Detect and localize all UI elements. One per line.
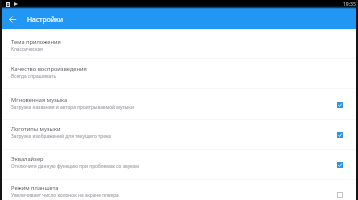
staticText: Увеличивает число колонок на экране плее… [11, 192, 119, 199]
staticText: Всегда спрашивать [11, 73, 57, 80]
staticText: Мгновенная музыка [11, 96, 68, 104]
button[interactable]: Back [2, 9, 23, 29]
button[interactable]: Качество воспроизведения [2, 59, 356, 89]
staticText: Режим планшета [11, 184, 59, 192]
button[interactable]: Мгновенная музыка [2, 89, 356, 120]
staticText: Качество воспроизведения [11, 65, 87, 73]
staticText: Классическая [11, 46, 43, 53]
staticText: Тема приложения [11, 38, 61, 46]
staticText: Загрузка названия и автора проигрываемой… [11, 104, 134, 111]
button[interactable]: Логотипы музыки [2, 120, 356, 150]
staticText: Настройки [27, 15, 64, 24]
staticText: Загрузка изображений для текущего трека [11, 133, 111, 140]
button[interactable]: Эквалайзер [2, 150, 356, 180]
button[interactable]: Тема приложения [2, 29, 356, 59]
button[interactable]: Режим планшета [2, 180, 356, 200]
staticText: Отключите данную функцию при проблемах с… [11, 163, 140, 170]
staticText: Логотипы музыки [11, 125, 61, 133]
staticText: Эквалайзер [11, 155, 44, 163]
staticText: 19:35 [343, 1, 356, 8]
